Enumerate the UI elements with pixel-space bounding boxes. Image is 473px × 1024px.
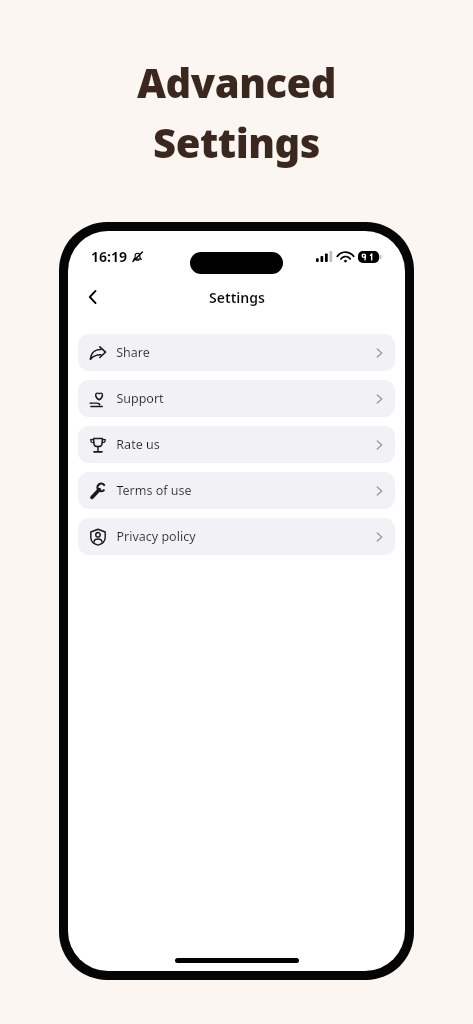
button[interactable]: Rate us: [78, 426, 395, 463]
staticText: Advanced: [137, 55, 336, 109]
staticText: Support: [116, 390, 164, 407]
staticText: Settings: [209, 288, 265, 307]
staticText: Terms of use: [116, 482, 192, 499]
staticText: Settings: [153, 115, 320, 169]
button[interactable]: Privacy policy: [78, 518, 395, 555]
button[interactable]: Terms of use: [78, 472, 395, 509]
button[interactable]: Share: [78, 334, 395, 371]
staticText: 16:19: [91, 247, 127, 266]
button[interactable]: Back: [76, 280, 110, 314]
staticText: Share: [116, 344, 150, 361]
staticText: Rate us: [116, 436, 160, 453]
staticText: Privacy policy: [116, 528, 196, 545]
button[interactable]: Support: [78, 380, 395, 417]
